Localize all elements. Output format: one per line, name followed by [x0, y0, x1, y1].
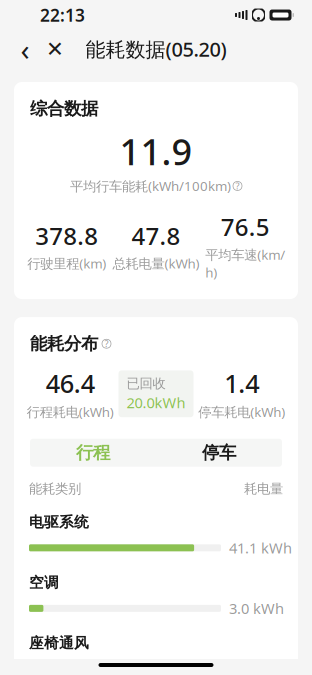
staticText: 行驶里程(km)	[27, 254, 106, 272]
staticText: 46.4	[46, 366, 95, 400]
staticText: 综合数据	[30, 98, 98, 119]
staticText: 行程	[76, 442, 110, 463]
staticText: 能耗类别	[29, 481, 81, 497]
staticText: 41.1 kWh	[229, 538, 292, 558]
staticText: 已回收	[126, 375, 165, 392]
button[interactable]: Back	[10, 32, 40, 66]
staticText: ?	[235, 180, 239, 192]
staticText: 空调	[29, 574, 59, 592]
staticText: ?	[104, 337, 108, 350]
staticText: 47.8	[131, 220, 180, 252]
button[interactable]: Close	[40, 32, 70, 66]
staticText: 平均行车能耗(kWh/100km)	[70, 177, 231, 195]
staticText: 停车	[202, 442, 236, 463]
staticText: 76.5	[221, 211, 270, 243]
staticText: 行程耗电(kWh)	[27, 403, 114, 421]
staticText: 能耗分布	[30, 333, 98, 354]
staticText: 3.0 kWh	[229, 599, 284, 618]
button[interactable]: 停车	[156, 439, 282, 467]
staticText: 1.4	[224, 366, 259, 400]
staticText: 平均车速(km/h)	[205, 246, 285, 281]
staticText: 耗电量	[244, 481, 283, 497]
staticText: 11.9	[119, 127, 192, 175]
staticText: 20.0kWh	[126, 393, 185, 412]
staticText: ‹	[20, 29, 29, 68]
staticText: 378.8	[35, 220, 98, 252]
button[interactable]: 行程	[30, 439, 156, 467]
staticText: 电驱系统	[29, 513, 89, 531]
staticText: 停车耗电(kWh)	[198, 403, 285, 421]
staticText: 能耗数据(05.20)	[85, 36, 226, 62]
staticText: 22:13	[40, 3, 85, 26]
staticText: 座椅通风	[29, 634, 89, 652]
staticText: 总耗电量(kWh)	[112, 254, 199, 272]
staticText: ✕	[46, 37, 64, 61]
